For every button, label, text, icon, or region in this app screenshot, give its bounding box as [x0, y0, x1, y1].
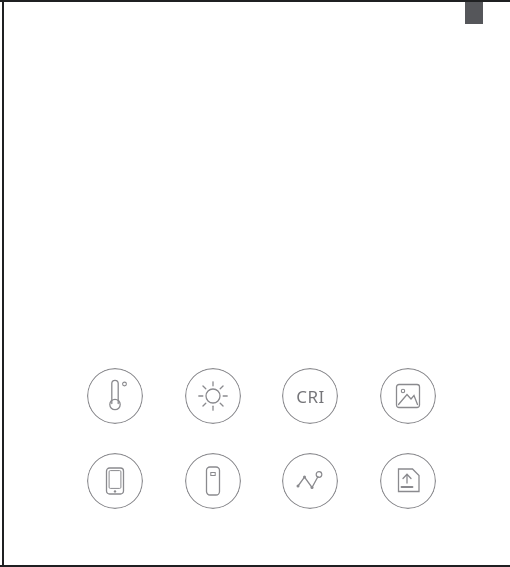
button[interactable]: Phone	[87, 453, 143, 509]
button[interactable]: Sensor	[185, 453, 241, 509]
staticText: CRI	[296, 385, 325, 408]
button[interactable]: Image	[380, 368, 436, 424]
button[interactable]: Brightness	[185, 368, 241, 424]
button[interactable]: Temperature	[87, 368, 143, 424]
button[interactable]: CRI	[282, 368, 338, 424]
button[interactable]: Chart	[282, 453, 338, 509]
button[interactable]: Export	[380, 453, 436, 509]
